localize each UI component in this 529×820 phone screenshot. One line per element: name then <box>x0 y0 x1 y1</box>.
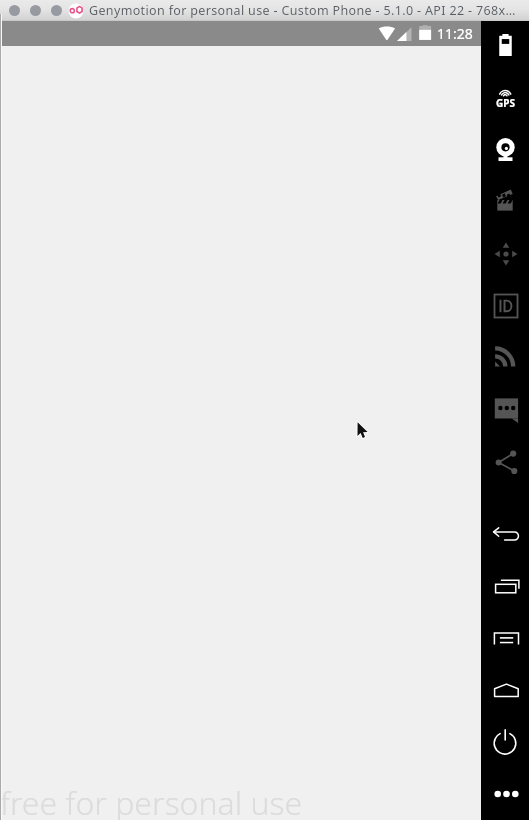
button[interactable]: Window control <box>51 5 62 16</box>
button[interactable]: Power <box>481 717 529 765</box>
button[interactable]: Network <box>481 333 529 381</box>
staticText: 11:28 <box>437 24 473 43</box>
button[interactable]: Back <box>481 510 529 558</box>
button[interactable]: Identifiers <box>481 282 529 330</box>
button[interactable]: Camera <box>481 124 529 172</box>
button[interactable]: D-pad <box>481 230 529 278</box>
staticText: Genymotion for personal use - Custom Pho… <box>89 2 516 19</box>
staticText: GPS <box>496 96 515 110</box>
button[interactable]: More options <box>481 770 529 818</box>
button[interactable]: Recent apps <box>481 562 529 610</box>
button[interactable]: Battery <box>481 21 529 69</box>
button[interactable]: SMS <box>481 386 529 434</box>
button[interactable]: Window control <box>9 5 20 16</box>
button[interactable]: GPS <box>481 73 529 121</box>
button[interactable]: Menu <box>481 614 529 662</box>
button[interactable]: Video recording <box>481 177 529 225</box>
button[interactable]: Home <box>481 666 529 714</box>
button[interactable]: Share <box>481 438 529 486</box>
button[interactable]: Window control <box>30 5 41 16</box>
staticText: free for personal use <box>0 781 303 820</box>
